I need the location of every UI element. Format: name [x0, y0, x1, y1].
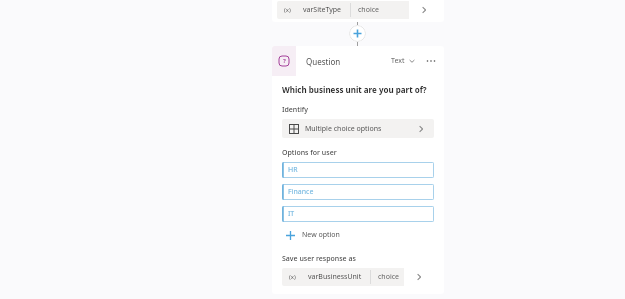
staticText: Text: [391, 56, 405, 66]
button[interactable]: IT: [282, 206, 434, 222]
staticText: Save user response as: [282, 254, 356, 264]
staticText: (x): [284, 6, 291, 14]
staticText: Finance: [288, 187, 314, 197]
staticText: Question: [306, 56, 341, 67]
button[interactable]: HR: [282, 162, 434, 178]
staticText: ?: [283, 57, 286, 65]
staticText: (x): [289, 273, 296, 281]
button[interactable]: Add step: [349, 25, 366, 42]
button[interactable]: (x): [277, 1, 439, 19]
staticText: Multiple choice options: [305, 124, 382, 134]
button[interactable]: (x): [282, 268, 434, 286]
staticText: varSiteType: [303, 5, 342, 15]
staticText: varBusinessUnit: [308, 272, 362, 282]
staticText: Identify: [282, 105, 308, 115]
button[interactable]: Finance: [282, 184, 434, 200]
button[interactable]: ?: [272, 46, 444, 76]
staticText: New option: [302, 230, 340, 240]
button[interactable]: More options: [424, 54, 438, 68]
button[interactable]: Text: [389, 56, 418, 66]
staticText: HR: [288, 165, 298, 175]
staticText: choice: [378, 272, 400, 282]
button[interactable]: New option: [282, 228, 340, 242]
staticText: Options for user: [282, 148, 337, 158]
staticText: Which business unit are you part of?: [282, 84, 427, 95]
staticText: IT: [288, 209, 295, 219]
staticText: choice: [358, 5, 380, 15]
button[interactable]: Multiple choice options: [282, 119, 434, 138]
